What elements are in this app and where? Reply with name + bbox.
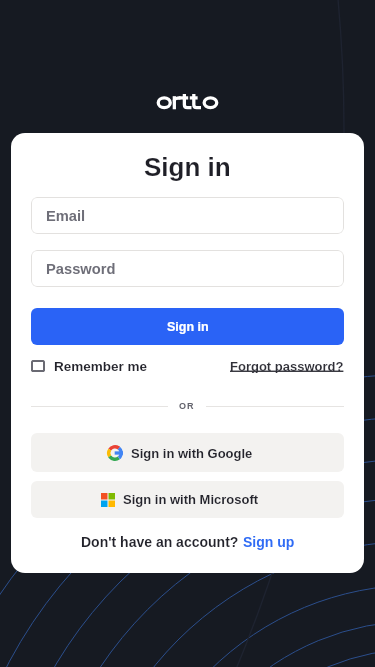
staticText: Password — [46, 261, 116, 277]
staticText: Forgot password? — [230, 359, 344, 373]
staticText: Sign in — [144, 152, 231, 181]
staticText: Sign in with Google — [131, 446, 253, 461]
staticText: OR — [179, 401, 195, 411]
button[interactable]: Sign in with Google — [31, 433, 344, 472]
staticText: Don't have an account? — [81, 534, 243, 550]
button[interactable]: Forgot password? — [230, 359, 344, 373]
staticText: Sign in with Microsoft — [123, 492, 259, 507]
staticText: Remember me — [54, 359, 148, 373]
button[interactable]: Sign up — [243, 534, 295, 550]
button[interactable]: Email — [31, 197, 344, 234]
staticText: Sign in — [167, 320, 209, 334]
button[interactable]: Password — [31, 250, 344, 287]
staticText: Sign up — [243, 534, 295, 550]
button[interactable]: Remember me — [31, 359, 148, 373]
staticText: Email — [46, 208, 86, 224]
button[interactable]: Sign in — [31, 308, 344, 345]
button[interactable]: Sign in with Microsoft — [31, 481, 344, 518]
